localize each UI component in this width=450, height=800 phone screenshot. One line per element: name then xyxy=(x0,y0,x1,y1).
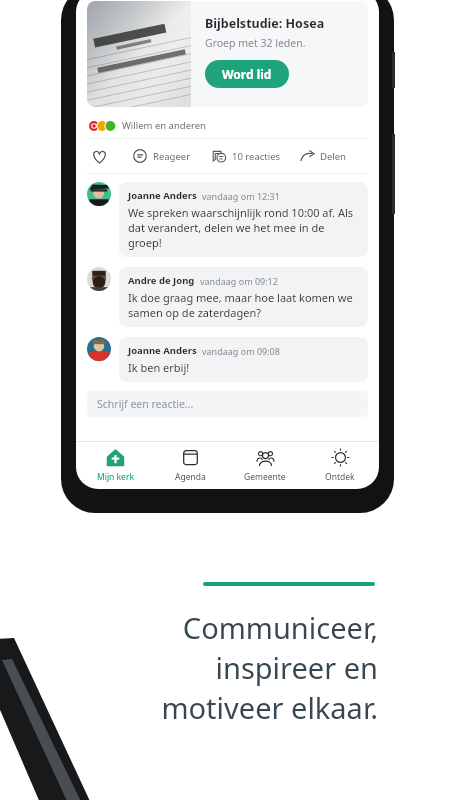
staticText: Communiceer, inspireer en motiveer elkaa… xyxy=(0,608,378,728)
staticText: We spreken waarschijnlijk rond 10:00 af.… xyxy=(128,205,359,250)
staticText: Bijbelstudie: Hosea xyxy=(205,15,325,32)
staticText: Andre de Jong xyxy=(128,274,195,287)
button[interactable]: Joanne Anders xyxy=(87,182,368,257)
staticText: Ik ben erbij! xyxy=(128,360,190,375)
button[interactable]: Willem en anderen xyxy=(88,119,367,132)
button[interactable]: Gemeente xyxy=(229,441,301,489)
button[interactable]: Ontdek xyxy=(304,441,376,489)
staticText: Joanne Anders xyxy=(128,189,197,202)
staticText: Schrijf een reactie... xyxy=(97,397,194,411)
staticText: Agenda xyxy=(175,471,206,483)
staticText: Reageer xyxy=(153,150,191,163)
button[interactable]: Schrijf een reactie... xyxy=(87,391,368,417)
button[interactable]: Mijn kerk xyxy=(79,441,151,489)
staticText: vandaag om 09:08 xyxy=(202,345,280,357)
button[interactable]: Vind ik leuk xyxy=(88,145,110,167)
button[interactable]: 10 reacties xyxy=(211,148,281,164)
staticText: Word lid xyxy=(222,66,272,82)
staticText: Groep met 32 leden. xyxy=(205,36,306,50)
staticText: Mijn kerk xyxy=(97,471,134,483)
staticText: Ontdek xyxy=(325,471,355,483)
button[interactable]: Delen xyxy=(299,148,346,164)
button[interactable]: Andre de Jong xyxy=(87,267,368,327)
staticText: Ik doe graag mee, maar hoe laat komen we… xyxy=(128,290,359,320)
staticText: Joanne Anders xyxy=(128,344,197,357)
staticText: Gemeente xyxy=(244,471,286,483)
staticText: Delen xyxy=(320,150,346,163)
button[interactable]: Joanne Anders xyxy=(87,337,368,382)
button[interactable]: Bijbelstudie: Hosea xyxy=(87,1,368,107)
staticText: 10 reacties xyxy=(232,150,281,163)
staticText: Willem en anderen xyxy=(122,119,206,132)
button[interactable]: Reageer xyxy=(132,148,191,164)
staticText: vandaag om 09:12 xyxy=(200,275,278,287)
staticText: vandaag om 12:31 xyxy=(202,190,280,202)
button[interactable]: Agenda xyxy=(154,441,226,489)
button[interactable]: Word lid xyxy=(205,60,289,88)
